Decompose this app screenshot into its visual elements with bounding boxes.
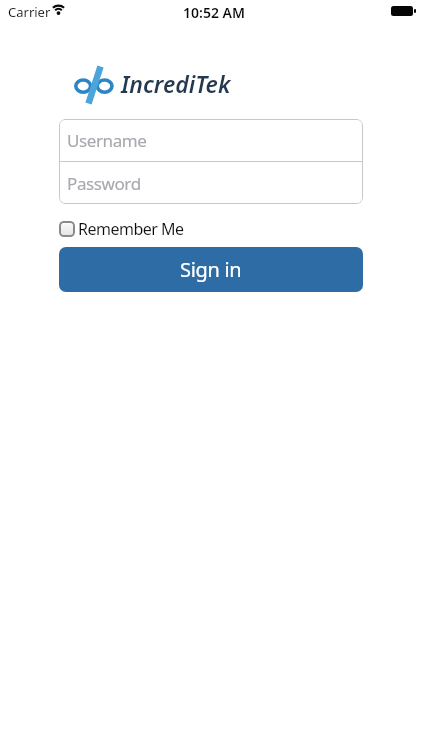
staticText: Username: [67, 129, 147, 152]
staticText: IncrediTek: [121, 68, 231, 99]
button[interactable]: Remember Me: [59, 218, 184, 240]
staticText: Remember Me: [78, 218, 184, 240]
button[interactable]: Password: [59, 162, 363, 204]
staticText: Sign in: [180, 256, 242, 283]
staticText: Password: [67, 172, 141, 195]
staticText: Carrier: [8, 3, 51, 21]
staticText: 10:52 AM: [3, 3, 422, 22]
button[interactable]: Username: [59, 119, 363, 161]
button[interactable]: Sign in: [59, 247, 363, 292]
